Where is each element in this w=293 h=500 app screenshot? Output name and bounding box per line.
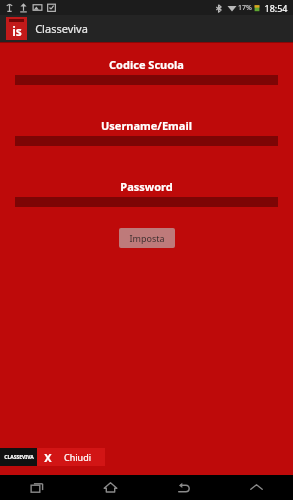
button[interactable]: Expand [220,475,293,500]
button[interactable]: Classeviva [0,448,37,466]
staticText: X [44,450,52,465]
staticText: Chiudi [64,451,91,463]
staticText: CLASSEVIVA [4,454,34,461]
button[interactable]: Home [74,475,147,500]
staticText: Classeviva [35,21,88,36]
staticText: 18:54 [264,2,288,14]
staticText: 17% [238,3,252,13]
button[interactable]: Back [147,475,220,500]
button[interactable]: X [37,448,105,466]
staticText: Imposta [129,232,165,244]
staticText: Codice Scuola [109,57,184,72]
staticText: is [12,23,22,39]
button[interactable]: Imposta [119,228,175,248]
staticText: Password [120,179,173,194]
staticText: Username/Email [101,118,192,133]
button[interactable]: Recents [0,475,74,500]
